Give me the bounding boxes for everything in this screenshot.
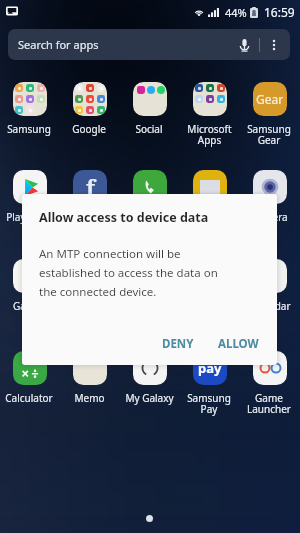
button[interactable]: Snapchat: [179, 169, 239, 224]
button[interactable]: Calculator: [0, 350, 59, 405]
staticText: Calculator: [5, 391, 53, 405]
button[interactable]: Contacts: [59, 258, 119, 313]
staticText: WhatsApp: [125, 210, 174, 224]
staticText: Gallery: [13, 299, 46, 313]
staticText: Search for apps: [18, 37, 99, 52]
staticText: An MTP connection will be established to…: [39, 246, 218, 299]
staticText: Gear: [256, 91, 284, 107]
button[interactable]: Gear: [239, 81, 299, 147]
button[interactable]: ALLOW: [206, 328, 271, 360]
button[interactable]: Google: [59, 81, 119, 136]
button[interactable]: pay: [179, 350, 239, 416]
staticText: Facebook: [67, 210, 112, 224]
button[interactable]: Social: [119, 81, 179, 136]
button[interactable]: Microsoft Apps: [179, 81, 239, 147]
staticText: Allow access to device data: [39, 209, 209, 226]
button[interactable]: Camera: [239, 169, 299, 224]
staticText: DENY: [162, 336, 194, 352]
button[interactable]: f: [59, 169, 119, 224]
staticText: Memo: [74, 391, 105, 405]
button[interactable]: Calendar: [239, 258, 299, 313]
button[interactable]: Game Launcher: [239, 350, 299, 416]
staticText: Samsung: [7, 122, 51, 136]
staticText: f: [86, 172, 95, 202]
button[interactable]: Clock: [179, 258, 239, 313]
button[interactable]: WhatsApp: [119, 169, 179, 224]
button[interactable]: DENY: [150, 328, 206, 360]
button[interactable]: Messages: [119, 258, 179, 313]
staticText: Calendar: [248, 299, 291, 313]
button[interactable]: Play Store: [0, 169, 59, 224]
button[interactable]: More options: [265, 36, 283, 54]
button[interactable]: My Galaxy: [119, 350, 179, 405]
button[interactable]: Search for apps: [8, 29, 290, 60]
staticText: Social: [135, 122, 163, 136]
button[interactable]: Voice search: [234, 35, 254, 55]
staticText: Camera: [251, 210, 288, 224]
button[interactable]: Samsung: [0, 81, 59, 136]
staticText: Snapchat: [187, 210, 231, 224]
button[interactable]: Memo: [59, 350, 119, 405]
button[interactable]: Gallery: [0, 258, 59, 313]
staticText: 16:59: [264, 4, 295, 20]
staticText: ALLOW: [218, 336, 259, 352]
staticText: Samsung Gear: [247, 122, 291, 147]
staticText: Play Store: [6, 210, 53, 224]
staticText: pay: [198, 359, 222, 377]
staticText: Google: [72, 122, 106, 136]
staticText: Microsoft Apps: [187, 122, 232, 147]
staticText: Game Launcher: [247, 391, 291, 416]
staticText: My Galaxy: [125, 391, 174, 405]
staticText: Samsung Pay: [187, 391, 231, 416]
staticText: 44%: [225, 5, 247, 20]
